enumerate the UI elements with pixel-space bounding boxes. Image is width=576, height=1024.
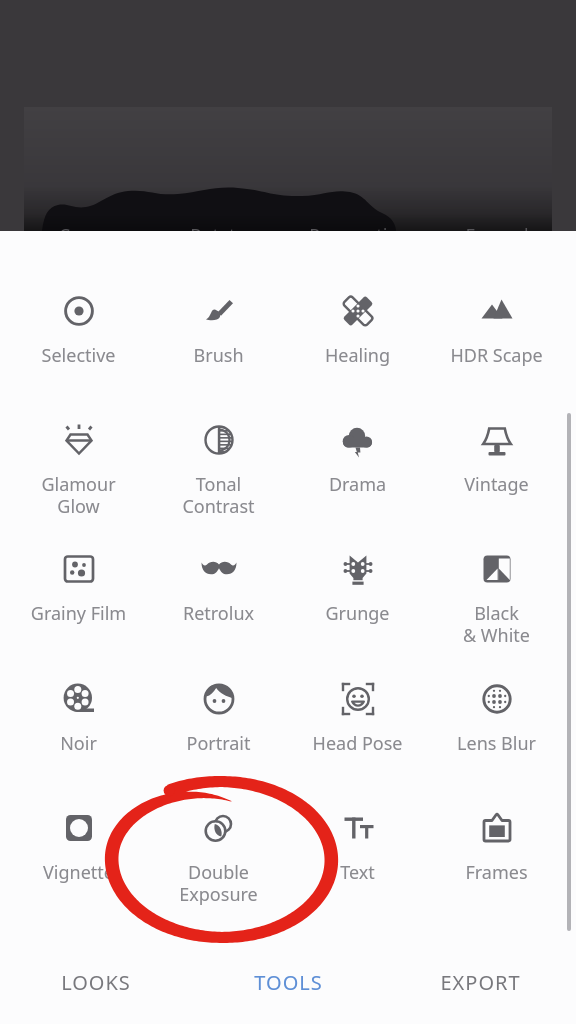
staticText: Noir xyxy=(9,731,148,756)
staticText: Head Pose xyxy=(288,731,427,756)
button[interactable]: Portrait xyxy=(149,668,288,768)
button[interactable]: Vignette xyxy=(9,797,148,897)
button[interactable]: Drama xyxy=(288,409,427,509)
button[interactable]: Brush xyxy=(149,280,288,380)
button[interactable]: Frames xyxy=(427,797,566,897)
button[interactable]: HDR Scape xyxy=(427,280,566,380)
staticText: Text xyxy=(288,860,427,885)
staticText: EXPORT xyxy=(440,969,521,996)
staticText: Frames xyxy=(427,860,566,885)
button[interactable]: Black & White xyxy=(427,538,566,638)
staticText: Portrait xyxy=(149,731,288,756)
staticText: Crop xyxy=(9,223,149,248)
button[interactable]: Lens Blur xyxy=(427,668,566,768)
button[interactable]: Glamour Glow xyxy=(9,409,148,509)
staticText: Expand xyxy=(427,223,567,248)
button[interactable]: Vintage xyxy=(427,409,566,509)
staticText: LOOKS xyxy=(61,969,131,996)
staticText: Rotate xyxy=(148,223,288,248)
button[interactable]: LOOKS xyxy=(0,940,192,1024)
button[interactable]: Grainy Film xyxy=(9,538,148,638)
staticText: Drama xyxy=(288,472,427,497)
button[interactable]: Healing xyxy=(288,280,427,380)
button[interactable]: Retrolux xyxy=(149,538,288,638)
button[interactable]: Tonal Contrast xyxy=(149,409,288,509)
staticText: Tonal Contrast xyxy=(149,472,288,518)
button[interactable]: TOOLS xyxy=(192,940,384,1024)
button[interactable]: Double Exposure xyxy=(149,797,288,897)
staticText: Healing xyxy=(288,343,427,368)
staticText: Selective xyxy=(9,343,148,368)
staticText: TOOLS xyxy=(254,969,323,996)
staticText: Lens Blur xyxy=(427,731,566,756)
staticText: Double Exposure xyxy=(149,860,288,906)
staticText: Retrolux xyxy=(149,601,288,626)
staticText: Vintage xyxy=(427,472,566,497)
staticText: Perspective xyxy=(288,223,428,248)
button[interactable]: Grunge xyxy=(288,538,427,638)
staticText: Brush xyxy=(149,343,288,368)
button[interactable]: EXPORT xyxy=(384,940,576,1024)
staticText: HDR Scape xyxy=(427,343,566,368)
button[interactable]: Noir xyxy=(9,668,148,768)
staticText: Grunge xyxy=(288,601,427,626)
staticText: Glamour Glow xyxy=(9,472,148,518)
staticText: Vignette xyxy=(9,860,148,885)
staticText: Grainy Film xyxy=(9,601,148,626)
button[interactable]: Selective xyxy=(9,280,148,380)
button[interactable]: Head Pose xyxy=(288,668,427,768)
button[interactable]: Text xyxy=(288,797,427,897)
staticText: Black & White xyxy=(427,601,566,647)
